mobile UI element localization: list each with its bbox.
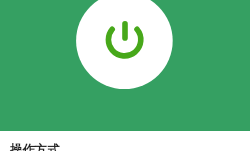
staticText: 操作方式 — [10, 142, 60, 151]
button[interactable]: Power — [76, 0, 173, 90]
